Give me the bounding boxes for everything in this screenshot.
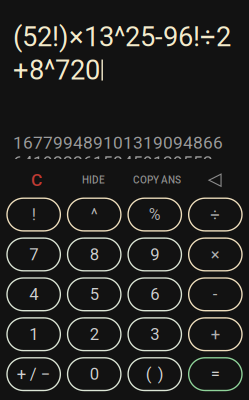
button[interactable]: 7 [7,238,60,271]
staticText: ( ) [146,364,164,384]
button[interactable]: 2 [68,318,121,351]
button[interactable]: × [189,238,242,271]
button[interactable]: 1 [7,318,60,351]
staticText: C [31,170,42,190]
staticText: + / − [17,364,51,384]
button[interactable]: 0 [68,358,121,390]
button[interactable]: + / − [7,358,60,390]
button[interactable]: 9 [128,238,181,271]
button[interactable]: ! [7,198,60,231]
staticText: = [211,364,220,384]
button[interactable]: 6 [128,278,181,311]
staticText: 0 [90,364,99,384]
staticText: 167799489101319094866 [13,133,223,153]
staticText: ! [32,205,36,224]
button[interactable]: 5 [68,278,121,311]
staticText: 3 [150,324,159,344]
staticText: +8^720 [13,54,100,86]
button[interactable]: COPY ANS [121,170,193,190]
staticText: 8 [90,245,99,264]
staticText: 5 [90,285,99,304]
staticText: COPY ANS [133,174,181,186]
button[interactable]: + [189,318,242,351]
staticText: ^ [91,205,98,224]
button[interactable]: % [128,198,181,231]
button[interactable]: HIDE [66,170,121,190]
staticText: 2 [90,324,99,344]
staticText: (52!)×13^25-96!÷2 [13,21,231,53]
staticText: 4 [29,285,38,304]
staticText: HIDE [82,174,105,186]
button[interactable]: ÷ [189,198,242,231]
button[interactable]: C [7,170,66,190]
button[interactable]: - [189,278,242,311]
staticText: % [149,205,161,224]
staticText: - [213,285,218,304]
button[interactable]: ( ) [128,358,181,390]
staticText: 7 [29,245,38,264]
button[interactable]: ^ [68,198,121,231]
button[interactable]: 3 [128,318,181,351]
staticText: + [211,324,220,344]
button[interactable]: 8 [68,238,121,271]
button[interactable]: 4 [7,278,60,311]
staticText: × [211,245,220,264]
staticText: 64192226158459139553 [13,152,213,172]
staticText: 1 [29,324,38,344]
staticText: ÷ [210,205,220,224]
staticText: 9 [150,245,159,264]
button[interactable]: Backspace [194,170,236,190]
button[interactable]: = [189,358,242,390]
staticText: 6 [150,285,159,304]
